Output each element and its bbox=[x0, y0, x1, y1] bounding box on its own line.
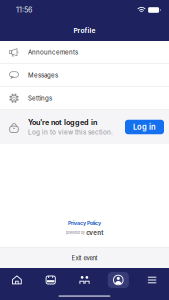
staticText: You're not logged in bbox=[28, 118, 97, 127]
button[interactable]: Home bbox=[0, 270, 34, 290]
button[interactable]: Log in bbox=[125, 120, 164, 134]
staticText: Settings bbox=[28, 94, 52, 102]
staticText: Messages bbox=[28, 71, 58, 79]
staticText: Announcements bbox=[28, 48, 78, 56]
staticText: cvent bbox=[86, 229, 103, 236]
staticText: Profile bbox=[73, 26, 95, 35]
button[interactable]: Schedule bbox=[34, 270, 68, 290]
staticText: Log in to view this section. bbox=[28, 128, 113, 136]
staticText: Exit event bbox=[71, 254, 97, 262]
staticText: Log in bbox=[133, 122, 156, 131]
button[interactable]: Exit event bbox=[0, 248, 169, 268]
button[interactable]: Privacy Policy bbox=[68, 220, 101, 226]
button[interactable]: Messages bbox=[0, 64, 169, 87]
button[interactable]: Settings bbox=[0, 87, 169, 110]
button[interactable]: More bbox=[135, 270, 169, 290]
staticText: Privacy Policy bbox=[68, 220, 101, 226]
button[interactable]: Profile bbox=[101, 270, 135, 290]
staticText: powered by bbox=[66, 230, 85, 235]
button[interactable]: Announcements bbox=[0, 41, 169, 64]
staticText: 11:56 bbox=[16, 6, 32, 14]
button[interactable]: Attendees bbox=[68, 270, 101, 290]
